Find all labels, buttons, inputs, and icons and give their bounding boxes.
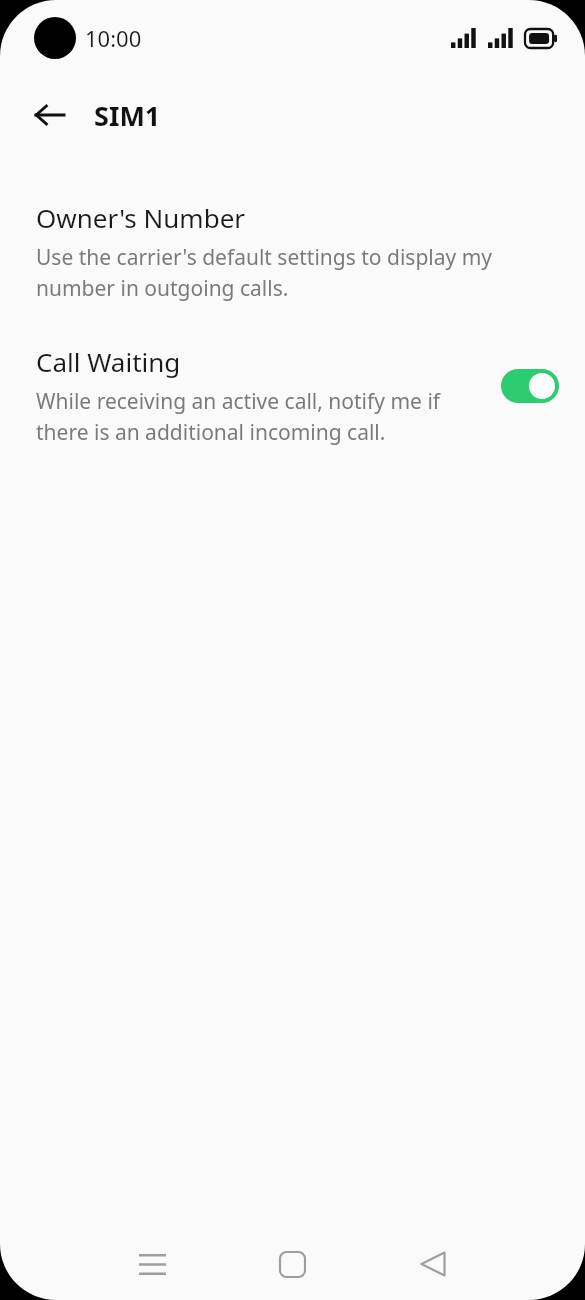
button[interactable]: Back [393,1228,473,1300]
button[interactable]: Call Waiting toggle [501,369,559,403]
staticText: Owner's Number [36,200,246,235]
button[interactable]: Home [252,1228,332,1300]
button[interactable]: Back [20,85,80,145]
button[interactable]: Recents [112,1228,192,1300]
button[interactable]: Call Waiting [0,344,585,446]
button[interactable]: Owner's Number [0,200,585,302]
staticText: SIM1 [94,97,161,134]
staticText: While receiving an active call, notify m… [36,387,495,446]
staticText: 10:00 [85,23,142,53]
staticText: Use the carrier's default settings to di… [36,243,536,302]
staticText: Call Waiting [36,344,181,379]
